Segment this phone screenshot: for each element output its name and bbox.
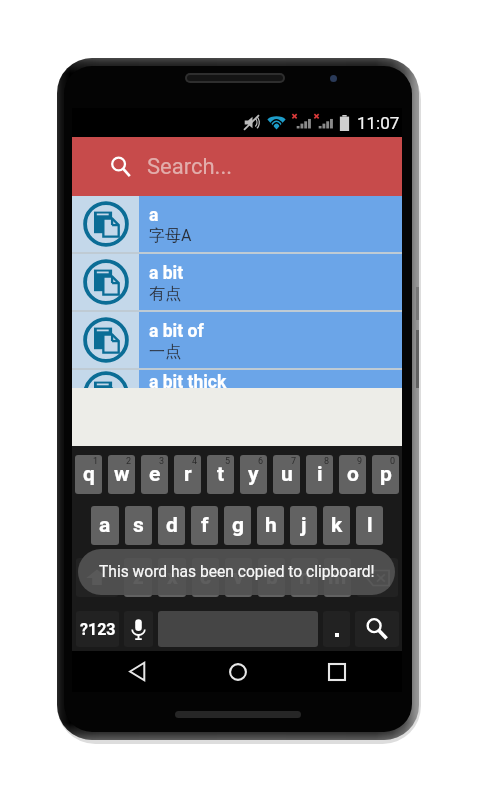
staticText: 11:07 <box>357 113 400 133</box>
staticText: q <box>83 462 95 487</box>
staticText: 一点 <box>149 342 181 362</box>
button[interactable]: Search <box>355 611 399 647</box>
button[interactable]: n <box>291 558 318 597</box>
button[interactable]: z <box>124 558 152 597</box>
staticText: p <box>380 462 392 487</box>
button[interactable]: u <box>273 455 300 494</box>
button[interactable]: s <box>125 506 152 545</box>
button[interactable] <box>323 611 350 647</box>
staticText: o <box>347 462 359 487</box>
button[interactable]: x <box>158 558 186 597</box>
button[interactable]: f <box>191 506 218 545</box>
button[interactable]: Shift <box>76 558 118 597</box>
button[interactable]: q <box>75 455 102 494</box>
staticText: 3 <box>159 456 165 467</box>
button[interactable]: t <box>207 455 234 494</box>
button[interactable]: Search... <box>72 137 402 196</box>
staticText: 0 <box>390 456 396 467</box>
staticText: h <box>265 513 277 538</box>
staticText: r <box>184 462 192 487</box>
staticText: w <box>114 462 130 487</box>
staticText: t <box>217 462 225 487</box>
button[interactable]: m <box>324 558 351 597</box>
staticText: 6 <box>258 456 264 467</box>
staticText: c <box>200 565 211 590</box>
staticText: n <box>299 565 311 590</box>
staticText: z <box>133 565 144 590</box>
button[interactable]: c <box>192 558 219 597</box>
button[interactable]: y <box>240 455 267 494</box>
button[interactable]: d <box>158 506 185 545</box>
staticText: y <box>248 462 259 487</box>
staticText: a bit of <box>149 321 204 342</box>
staticText: 字母A <box>149 226 192 246</box>
staticText: ?123 <box>80 620 116 639</box>
button[interactable]: a <box>91 506 119 545</box>
button[interactable]: h <box>257 506 284 545</box>
staticText: 1 <box>93 456 99 467</box>
button[interactable]: v <box>225 558 252 597</box>
button[interactable]: ?123 <box>76 611 119 647</box>
button[interactable]: p <box>372 455 399 494</box>
button[interactable]: b <box>258 558 285 597</box>
button[interactable]: Voice input <box>124 611 153 647</box>
staticText: 2 <box>126 456 132 467</box>
staticText: k <box>331 513 343 538</box>
staticText: a <box>99 513 111 538</box>
button[interactable]: a bit of <box>72 312 402 368</box>
staticText: 4 <box>192 456 198 467</box>
button[interactable]: i <box>306 455 333 494</box>
staticText: This word has been copied to clipboard! <box>99 563 375 581</box>
button[interactable]: Delete <box>357 558 398 597</box>
staticText: v <box>233 565 244 590</box>
button[interactable]: w <box>108 455 135 494</box>
staticText: 7 <box>291 456 297 467</box>
staticText: e <box>149 462 161 487</box>
staticText: s <box>133 513 144 538</box>
button[interactable]: k <box>323 506 350 545</box>
staticText: d <box>166 513 178 538</box>
staticText: a bit <box>149 263 184 284</box>
button[interactable]: Home <box>217 651 258 692</box>
staticText: a <box>149 205 159 226</box>
staticText: u <box>281 462 293 487</box>
staticText: a bit thick <box>149 372 227 388</box>
staticText: m <box>328 565 347 590</box>
staticText: j <box>301 513 307 538</box>
staticText: g <box>232 513 244 538</box>
button[interactable]: o <box>339 455 366 494</box>
staticText: f <box>201 513 209 538</box>
button[interactable]: l <box>356 506 383 545</box>
staticText: x <box>167 565 178 590</box>
staticText: 9 <box>357 456 363 467</box>
button[interactable]: a bit thick <box>72 370 402 388</box>
staticText: i <box>317 462 323 487</box>
button[interactable]: r <box>174 455 201 494</box>
staticText: b <box>266 565 278 590</box>
button[interactable]: j <box>290 506 317 545</box>
button[interactable]: e <box>141 455 168 494</box>
staticText: Search... <box>147 154 232 180</box>
staticText: 5 <box>225 456 231 467</box>
button[interactable]: Back <box>117 651 158 692</box>
button[interactable]: g <box>224 506 251 545</box>
staticText: 8 <box>324 456 330 467</box>
button[interactable]: Recent apps <box>316 651 357 692</box>
staticText: 有点 <box>149 284 181 304</box>
staticText: l <box>367 513 373 538</box>
button[interactable]: a <box>72 196 402 252</box>
button[interactable]: a bit <box>72 254 402 310</box>
